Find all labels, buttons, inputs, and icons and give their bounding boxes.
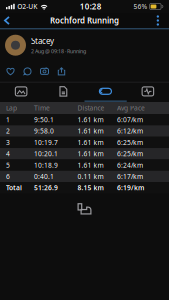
staticText: 10:28 [80, 1, 102, 12]
button[interactable]: Heart rate [127, 82, 169, 100]
staticText: O2-UK [17, 2, 37, 11]
staticText: 1.61 km [77, 138, 103, 147]
staticText: 6 [6, 172, 10, 181]
staticText: Distance [77, 104, 104, 112]
staticText: Stacey [31, 36, 54, 46]
button[interactable]: Shoes [0, 202, 169, 215]
staticText: 1.61 km [77, 149, 103, 158]
staticText: 0.11 km [77, 172, 103, 181]
staticText: 1.61 km [77, 127, 103, 135]
staticText: Total [6, 183, 22, 192]
staticText: 3 [6, 138, 10, 147]
button[interactable]: Like [2, 64, 19, 78]
button[interactable]: Laps [84, 82, 127, 100]
staticText: 10:19.7 [34, 138, 58, 147]
staticText: 1.61 km [77, 161, 103, 169]
staticText: 6:19/km [117, 183, 144, 192]
button[interactable]: Back [0, 13, 16, 28]
staticText: 1.61 km [77, 115, 103, 124]
staticText: 6:17/km [117, 172, 143, 181]
staticText: 10:20.1 [34, 149, 58, 158]
staticText: 51:26.9 [34, 183, 58, 192]
staticText: 6:24/km [117, 161, 143, 169]
staticText: Lap [6, 104, 17, 112]
staticText: Avg Pace [117, 104, 145, 112]
staticText: 0:40.1 [34, 172, 54, 181]
staticText: 2 [6, 127, 10, 135]
button[interactable]: More [151, 13, 169, 28]
button[interactable]: Comment [19, 64, 36, 78]
staticText: 6:07/km [117, 115, 143, 124]
staticText: 9:50.1 [34, 115, 54, 124]
staticText: 4 [6, 149, 10, 158]
button[interactable]: Share [53, 64, 70, 78]
staticText: Time [34, 104, 50, 112]
staticText: 2 Aug @ 09:18 · Running [31, 48, 86, 55]
staticText: Rochford Running [50, 15, 119, 26]
button[interactable]: Map [0, 82, 42, 100]
staticText: 10:18.9 [34, 161, 58, 169]
staticText: 56% [133, 2, 147, 11]
staticText: 6:12/km [117, 127, 143, 135]
staticText: 5 [6, 161, 10, 169]
staticText: 1 [6, 115, 10, 124]
staticText: 9:58.0 [34, 127, 54, 135]
staticText: 6:25/km [117, 138, 143, 147]
staticText: 6:25/km [117, 149, 143, 158]
staticText: 8.15 km [77, 183, 103, 192]
button[interactable]: Photos [36, 64, 53, 78]
button[interactable]: Splits [42, 82, 84, 100]
